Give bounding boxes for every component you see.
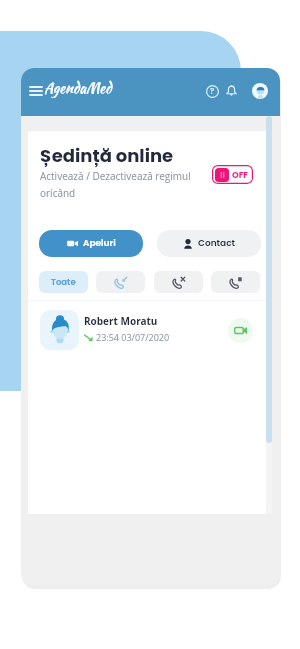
button[interactable]: Profile	[252, 83, 268, 99]
button[interactable]: Menu	[25, 80, 47, 102]
button[interactable]: Contact	[157, 230, 261, 257]
button[interactable]: Notifications	[220, 80, 242, 102]
button[interactable]: Apeluri	[39, 230, 143, 257]
staticText: Toate	[51, 276, 76, 288]
staticText: Activează / Dezactivează regimul oricând	[40, 169, 191, 200]
button[interactable]: Incoming calls	[96, 271, 145, 293]
button[interactable]: Video call	[228, 318, 253, 343]
staticText: 23:54 03/07/2020	[96, 331, 170, 343]
button[interactable]: Missed calls	[154, 271, 203, 293]
staticText: Ședință online	[40, 143, 174, 168]
staticText: OFF	[232, 169, 248, 181]
button[interactable]: OFF	[212, 165, 253, 184]
staticText: Robert Moratu	[84, 314, 158, 328]
staticText: Apeluri	[83, 237, 116, 250]
staticText: AgendaMed	[44, 77, 112, 98]
staticText: ?	[210, 86, 215, 97]
button[interactable]: Outgoing calls	[211, 271, 260, 293]
button[interactable]: Help	[201, 80, 223, 102]
button[interactable]: Toate	[39, 271, 88, 293]
button[interactable]: Robert Moratu	[28, 302, 266, 354]
staticText: Contact	[198, 237, 236, 250]
